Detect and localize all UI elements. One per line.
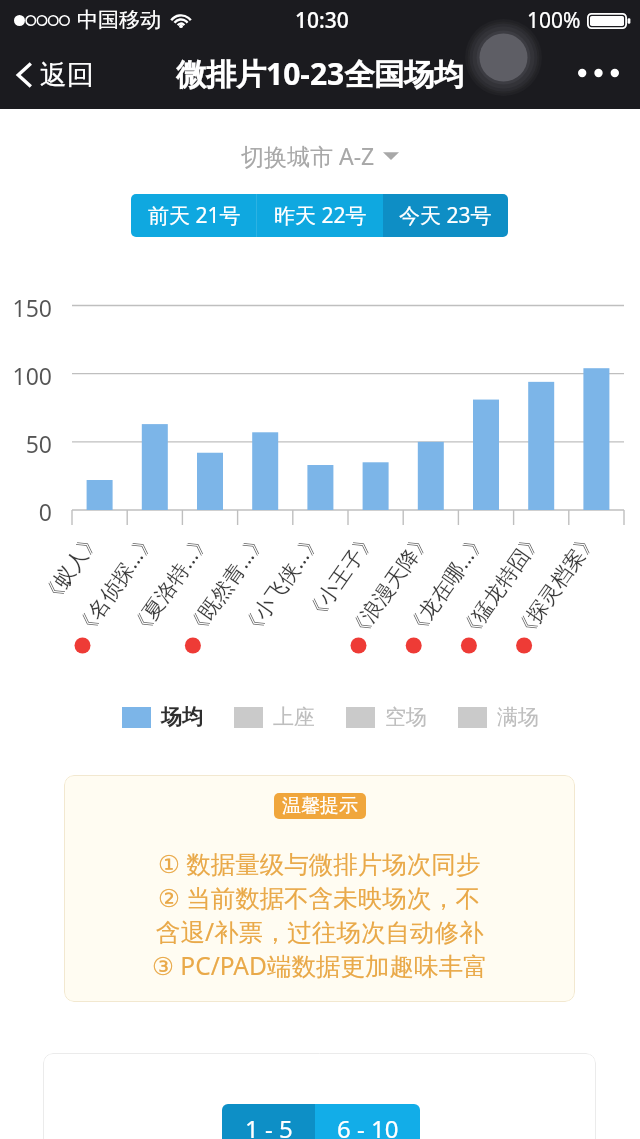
button[interactable]: More options bbox=[570, 50, 627, 96]
button[interactable]: 温馨提示 bbox=[274, 793, 366, 819]
staticText: 《小王子》 bbox=[300, 526, 382, 627]
staticText: 前天 21号 bbox=[148, 201, 241, 230]
staticText: 上座 bbox=[273, 704, 315, 730]
staticText: 《小飞侠…》 bbox=[235, 526, 328, 643]
staticText: 《浪漫天降》 bbox=[343, 526, 437, 645]
staticText: 《既然青…》 bbox=[180, 526, 273, 643]
staticText: 空场 bbox=[385, 704, 427, 730]
staticText: 50 bbox=[0, 428, 52, 459]
staticText: 微排片10-23全国场均 bbox=[176, 53, 465, 94]
staticText: 今天 23号 bbox=[399, 201, 492, 230]
staticText: 《龙在哪…》 bbox=[400, 526, 493, 643]
staticText: 150 bbox=[0, 292, 52, 323]
button[interactable]: 1 - 5 bbox=[222, 1104, 315, 1139]
staticText: 场均 bbox=[161, 704, 203, 730]
button[interactable]: 今天 23号 bbox=[383, 194, 508, 237]
staticText: 《探灵档案》 bbox=[509, 526, 603, 645]
staticText: 切换城市 A-Z bbox=[241, 140, 375, 171]
staticText: 《名侦探…》 bbox=[69, 526, 162, 643]
button[interactable]: 前天 21号 bbox=[131, 194, 257, 237]
staticText: 6 - 10 bbox=[337, 1112, 399, 1139]
staticText: 返回 bbox=[40, 58, 94, 92]
staticText: 100 bbox=[0, 360, 52, 391]
button[interactable]: 场均 bbox=[122, 704, 203, 730]
staticText: 中国移动 bbox=[77, 7, 161, 33]
staticText: ① 数据量级与微排片场次同步 bbox=[158, 847, 481, 880]
staticText: 100% bbox=[527, 6, 581, 35]
staticText: 满场 bbox=[497, 704, 539, 730]
button[interactable]: 切换城市 A-Z bbox=[235, 136, 405, 175]
button[interactable]: 返回 bbox=[0, 50, 108, 100]
button[interactable]: 满场 bbox=[458, 704, 539, 730]
staticText: 0 bbox=[0, 496, 52, 527]
staticText: 昨天 22号 bbox=[274, 201, 367, 230]
button[interactable]: 上座 bbox=[234, 704, 315, 730]
staticText: 《夏洛特…》 bbox=[124, 526, 217, 643]
staticText: 温馨提示 bbox=[282, 794, 358, 818]
button[interactable]: 昨天 22号 bbox=[257, 194, 383, 237]
staticText: 含退/补票，过往场次自动修补 bbox=[156, 915, 484, 948]
staticText: 10:30 bbox=[295, 6, 349, 35]
staticText: 1 - 5 bbox=[245, 1112, 293, 1139]
staticText: ③ PC/PAD端数据更加趣味丰富 bbox=[152, 949, 488, 982]
staticText: 《猛龙特囧》 bbox=[454, 526, 548, 645]
staticText: 《蚁人》 bbox=[36, 526, 106, 610]
staticText: ② 当前数据不含未映场次，不 bbox=[158, 881, 481, 914]
button[interactable]: 6 - 10 bbox=[315, 1104, 420, 1139]
button[interactable]: AssistiveTouch bbox=[465, 19, 542, 96]
button[interactable]: 空场 bbox=[346, 704, 427, 730]
